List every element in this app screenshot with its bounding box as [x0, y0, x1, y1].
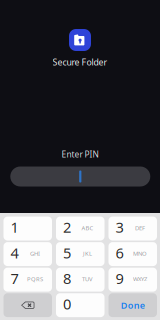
staticText: 7: [10, 268, 18, 288]
button[interactable]: Delete: [3, 293, 52, 317]
staticText: Secure Folder: [52, 56, 107, 68]
staticText: TUV: [82, 275, 93, 283]
button[interactable]: 6: [108, 242, 157, 266]
staticText: 1: [10, 217, 18, 237]
staticText: 6: [115, 243, 123, 262]
staticText: 8: [63, 268, 71, 288]
button[interactable]: 5: [56, 242, 104, 266]
staticText: PQRS: [27, 275, 43, 283]
staticText: 0: [63, 294, 71, 314]
staticText: 4: [10, 243, 18, 262]
staticText: Enter PIN: [61, 148, 98, 160]
staticText: JKL: [83, 249, 92, 257]
button[interactable]: Done: [108, 293, 157, 317]
button[interactable]: 7: [3, 268, 52, 292]
staticText: 5: [63, 243, 71, 262]
staticText: 2: [63, 217, 71, 237]
staticText: DEF: [135, 224, 145, 232]
staticText: 3: [115, 217, 123, 237]
button[interactable]: 0: [56, 293, 104, 317]
button[interactable]: 4: [3, 242, 52, 266]
staticText: ABC: [81, 224, 93, 232]
button[interactable]: 8: [56, 268, 104, 292]
button[interactable]: 1: [3, 217, 52, 240]
button[interactable]: 9: [108, 268, 157, 292]
staticText: MNO: [133, 249, 147, 257]
staticText: WXYZ: [133, 275, 147, 283]
staticText: 9: [115, 268, 123, 288]
staticText: Done: [121, 299, 145, 311]
button[interactable]: 3: [108, 217, 157, 240]
staticText: GHI: [30, 249, 40, 257]
button[interactable]: 2: [56, 217, 104, 240]
